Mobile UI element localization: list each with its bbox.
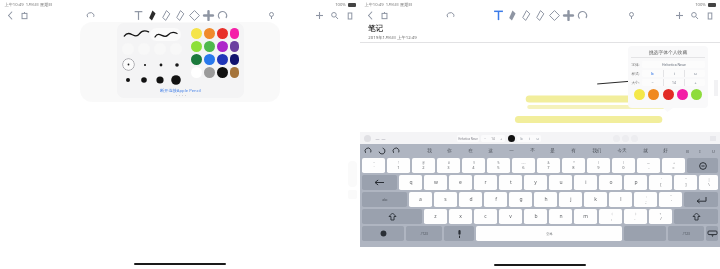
button[interactable]: Helvetica Neue (642, 61, 705, 68)
button[interactable]: b (517, 135, 525, 142)
button[interactable]: @ (412, 158, 435, 173)
button[interactable]: b (524, 209, 547, 224)
button[interactable] (634, 89, 645, 100)
button[interactable]: Shift (362, 209, 422, 224)
button[interactable]: Search (689, 10, 700, 21)
button[interactable]: * (562, 158, 585, 173)
button[interactable]: Tool 3 (534, 9, 547, 22)
button[interactable] (191, 67, 202, 78)
button[interactable] (122, 58, 135, 71)
button[interactable]: % (487, 158, 510, 173)
button[interactable] (204, 67, 215, 78)
button[interactable] (217, 41, 228, 52)
button[interactable]: | (699, 175, 718, 190)
button[interactable]: .?123 (668, 226, 704, 241)
button[interactable]: " (659, 192, 682, 207)
button[interactable]: Tool 4 (188, 9, 201, 22)
button[interactable]: u (549, 175, 572, 190)
button[interactable]: 是 (549, 148, 556, 154)
button[interactable]: + (497, 135, 505, 142)
button[interactable]: ! (387, 158, 410, 173)
button[interactable] (684, 192, 718, 207)
button[interactable]: u (533, 135, 541, 142)
button[interactable]: Search (329, 10, 340, 21)
button[interactable]: ¥ (462, 158, 485, 173)
button[interactable]: — (637, 158, 660, 173)
button[interactable]: 好 (662, 148, 669, 154)
button[interactable] (204, 28, 215, 39)
button[interactable] (691, 89, 702, 100)
button[interactable] (230, 67, 239, 78)
button[interactable] (687, 158, 718, 173)
button[interactable]: Tool 6 (576, 9, 589, 22)
button[interactable]: ' (649, 175, 672, 190)
button[interactable] (648, 89, 659, 100)
button[interactable] (217, 67, 228, 78)
button[interactable]: l (609, 192, 632, 207)
button[interactable]: g (509, 192, 532, 207)
button[interactable] (204, 54, 215, 65)
button[interactable]: 我 (426, 148, 433, 154)
button[interactable]: Format (364, 135, 371, 142)
button[interactable]: u (685, 70, 705, 77)
button[interactable]: p (624, 175, 647, 190)
button[interactable]: Tool 2 (160, 9, 173, 22)
button[interactable]: Dictation (444, 226, 474, 241)
button[interactable]: Tool 5 (202, 9, 215, 22)
button[interactable]: U (709, 147, 717, 155)
button[interactable] (663, 89, 674, 100)
button[interactable]: z (424, 209, 447, 224)
button[interactable]: Color (508, 135, 515, 142)
button[interactable]: 你 (446, 148, 453, 154)
button[interactable]: o (599, 175, 622, 190)
button[interactable] (677, 89, 688, 100)
button[interactable]: …… (512, 158, 535, 173)
button[interactable]: 这 (487, 148, 494, 154)
button[interactable]: Undo (85, 10, 96, 21)
button[interactable]: New note (314, 10, 325, 21)
button[interactable]: 》 (624, 209, 647, 224)
button[interactable]: Tool 1 (146, 9, 159, 22)
button[interactable]: x (449, 209, 472, 224)
button[interactable]: 空格 (476, 226, 622, 241)
button[interactable] (122, 74, 134, 86)
button[interactable]: a (409, 192, 432, 207)
button[interactable]: y (524, 175, 547, 190)
button[interactable]: Undo 1 (377, 146, 386, 155)
button[interactable]: i (525, 135, 533, 142)
button[interactable]: I (696, 147, 704, 155)
button[interactable] (154, 74, 166, 86)
button[interactable]: More (704, 10, 715, 21)
button[interactable] (191, 41, 202, 52)
button[interactable] (204, 41, 215, 52)
button[interactable]: Tool 5 (562, 9, 575, 22)
button[interactable] (362, 175, 397, 190)
button[interactable]: 在 (467, 148, 474, 154)
button[interactable]: 断开连接Apple Pencil (160, 88, 201, 94)
button[interactable]: Undo 2 (391, 146, 400, 155)
button[interactable]: Notes list (379, 10, 390, 21)
button[interactable]: Hide keyboard (706, 226, 718, 241)
button[interactable]: b (642, 70, 663, 77)
button[interactable]: abc (362, 192, 407, 207)
button[interactable] (155, 59, 167, 71)
button[interactable] (191, 28, 202, 39)
button[interactable]: k (584, 192, 607, 207)
button[interactable]: # (437, 158, 460, 173)
button[interactable]: j (559, 192, 582, 207)
button[interactable]: Tool 6 (216, 9, 229, 22)
button[interactable]: w (424, 175, 447, 190)
button[interactable]: Helvetica Neue (457, 135, 479, 142)
button[interactable] (217, 54, 228, 65)
button[interactable] (191, 54, 202, 65)
button[interactable]: ) (612, 158, 635, 173)
button[interactable]: e (449, 175, 472, 190)
button[interactable]: f (484, 192, 507, 207)
button[interactable]: i (664, 70, 684, 77)
